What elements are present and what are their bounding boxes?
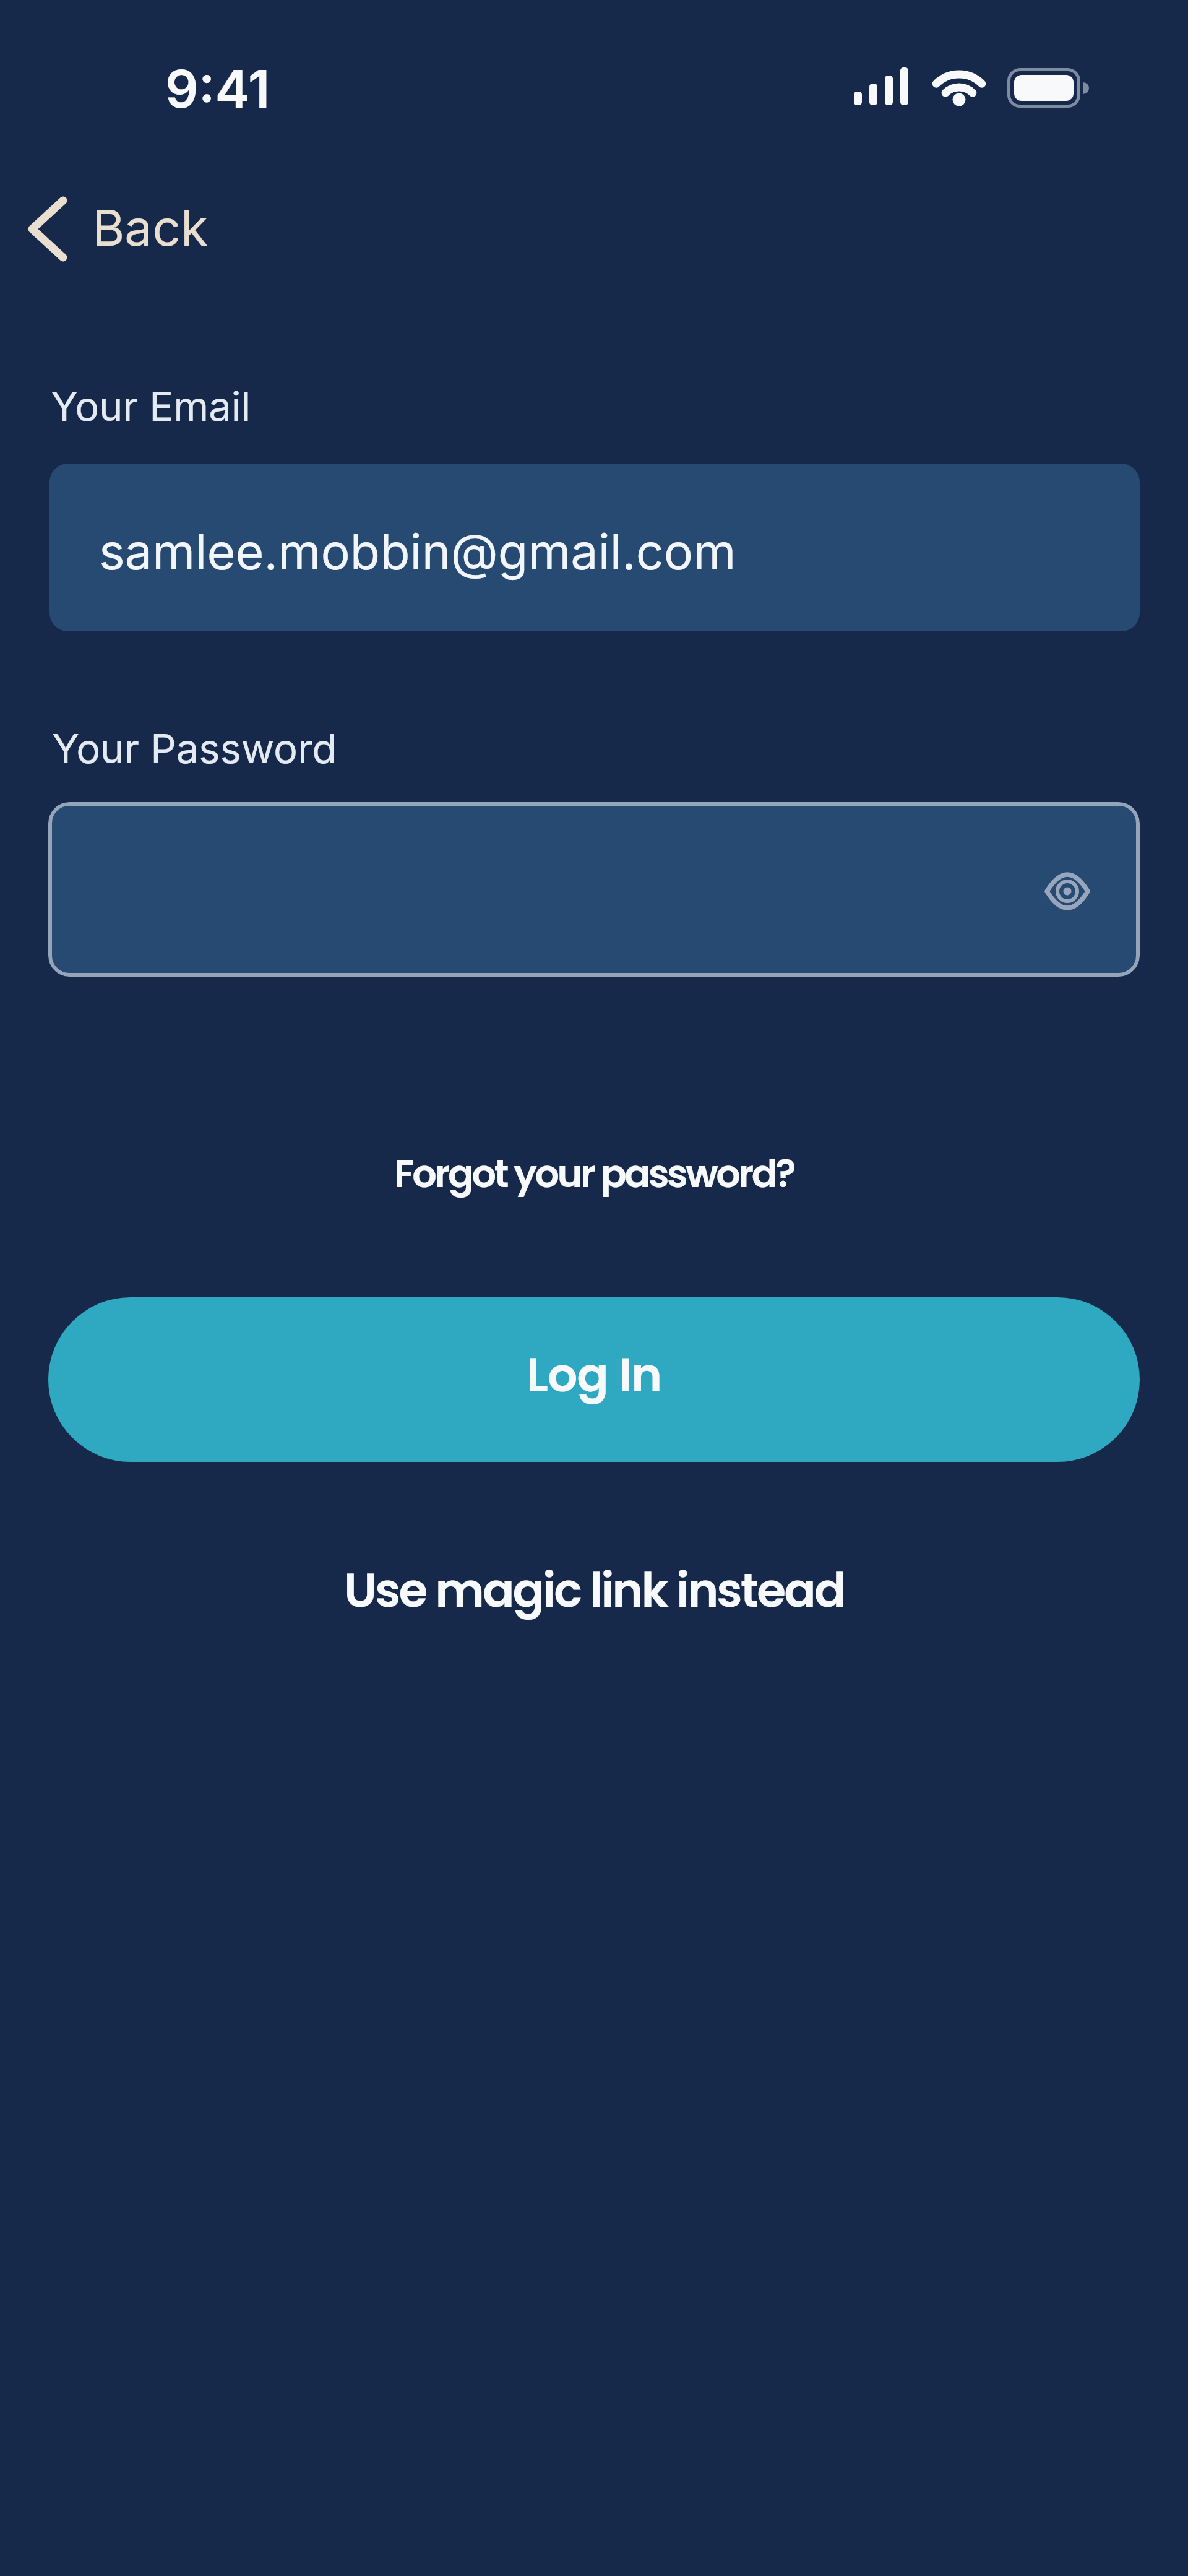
staticText: Log In <box>527 1342 662 1407</box>
staticText: Your Email <box>51 382 251 431</box>
button[interactable]: Log In <box>48 1297 1140 1462</box>
staticText: samlee.mobbin@gmail.com <box>99 522 736 581</box>
button[interactable] <box>48 802 1140 977</box>
button[interactable]: Forgot your password? <box>394 1147 794 1201</box>
button[interactable]: samlee.mobbin@gmail.com <box>49 464 1140 631</box>
staticText: Your Password <box>52 724 337 773</box>
button[interactable]: Back <box>19 186 217 269</box>
staticText: Back <box>92 197 208 257</box>
staticText: 9:41 <box>165 58 270 121</box>
button[interactable]: Use magic link instead <box>344 1557 845 1623</box>
